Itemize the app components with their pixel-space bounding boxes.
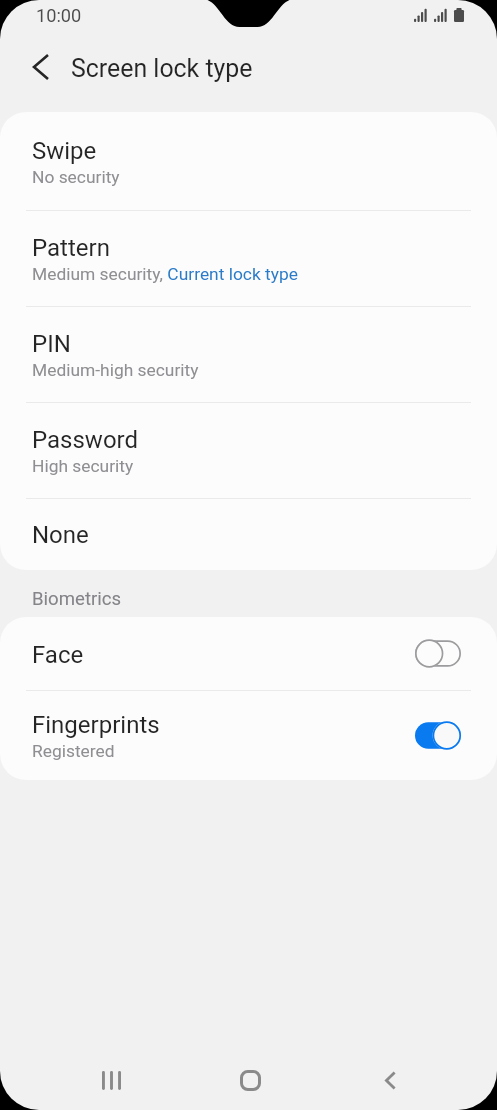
staticText: Registered	[32, 741, 115, 761]
button[interactable]: None	[0, 498, 497, 570]
button[interactable]: Face	[0, 617, 497, 690]
staticText: None	[32, 521, 89, 549]
staticText: Fingerprints	[32, 711, 160, 739]
staticText: PIN	[32, 330, 71, 358]
staticText: Face	[32, 641, 84, 669]
button[interactable]: PIN	[0, 306, 497, 402]
button[interactable]: Swipe	[0, 112, 497, 210]
staticText: Pattern	[32, 234, 110, 262]
staticText: Biometrics	[32, 588, 122, 610]
staticText: 10:00	[36, 5, 82, 26]
button[interactable]: Password	[0, 402, 497, 498]
staticText: Medium security, Current lock type	[32, 264, 298, 284]
button[interactable]: Fingerprints	[0, 690, 497, 780]
button[interactable]: Back	[355, 1050, 425, 1110]
staticText: Medium-high security	[32, 360, 199, 380]
staticText: Screen lock type	[71, 54, 253, 83]
button[interactable]: Pattern	[0, 210, 497, 306]
staticText: Swipe	[32, 137, 97, 165]
staticText: Password	[32, 426, 139, 454]
other: Off	[413, 639, 461, 668]
button[interactable]: Recent apps	[76, 1050, 146, 1110]
button[interactable]: Home	[215, 1050, 285, 1110]
other: On	[413, 721, 461, 750]
staticText: High security	[32, 456, 134, 476]
button[interactable]: Back	[18, 44, 63, 89]
staticText: No security	[32, 167, 120, 187]
